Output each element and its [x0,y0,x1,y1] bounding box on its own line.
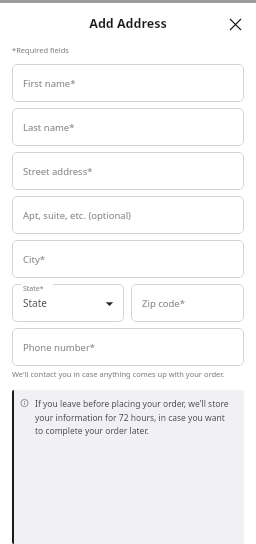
button[interactable]: State [12,284,124,322]
staticText: State [23,296,47,310]
staticText: Apt, suite, etc. (optional) [23,209,131,222]
button[interactable]: Last name* [12,108,244,146]
button[interactable]: Zip code* [131,284,244,322]
button[interactable]: Phone number* [12,328,244,366]
staticText: If you leave before placing your order, … [35,398,234,436]
staticText: First name* [23,77,76,90]
button[interactable]: Street address* [12,152,244,190]
button[interactable]: Apt, suite, etc. (optional) [12,196,244,234]
staticText: Street address* [23,165,93,178]
staticText: City* [23,253,45,266]
staticText: State* [23,284,44,294]
other: Open state list [105,299,114,308]
staticText: Last name* [23,121,75,134]
button[interactable]: First name* [12,64,244,102]
staticText: Add Address [0,15,256,32]
button[interactable]: Close [222,11,248,37]
button[interactable]: City* [12,240,244,278]
staticText: Zip code* [142,297,185,310]
staticText: We'll contact you in case anything comes… [12,369,225,379]
staticText: Phone number* [23,341,96,354]
staticText: *Required fields [12,45,69,55]
